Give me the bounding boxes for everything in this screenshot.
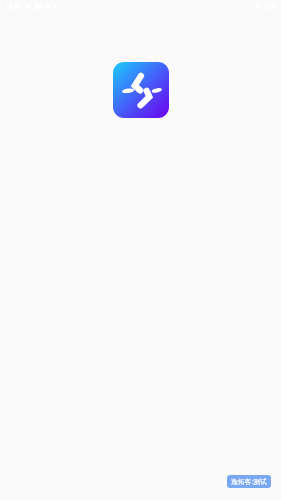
button[interactable]: App logo	[113, 62, 169, 118]
button[interactable]: 逸拓客:测试	[227, 475, 271, 488]
staticText: 逸拓客:测试	[231, 477, 267, 486]
